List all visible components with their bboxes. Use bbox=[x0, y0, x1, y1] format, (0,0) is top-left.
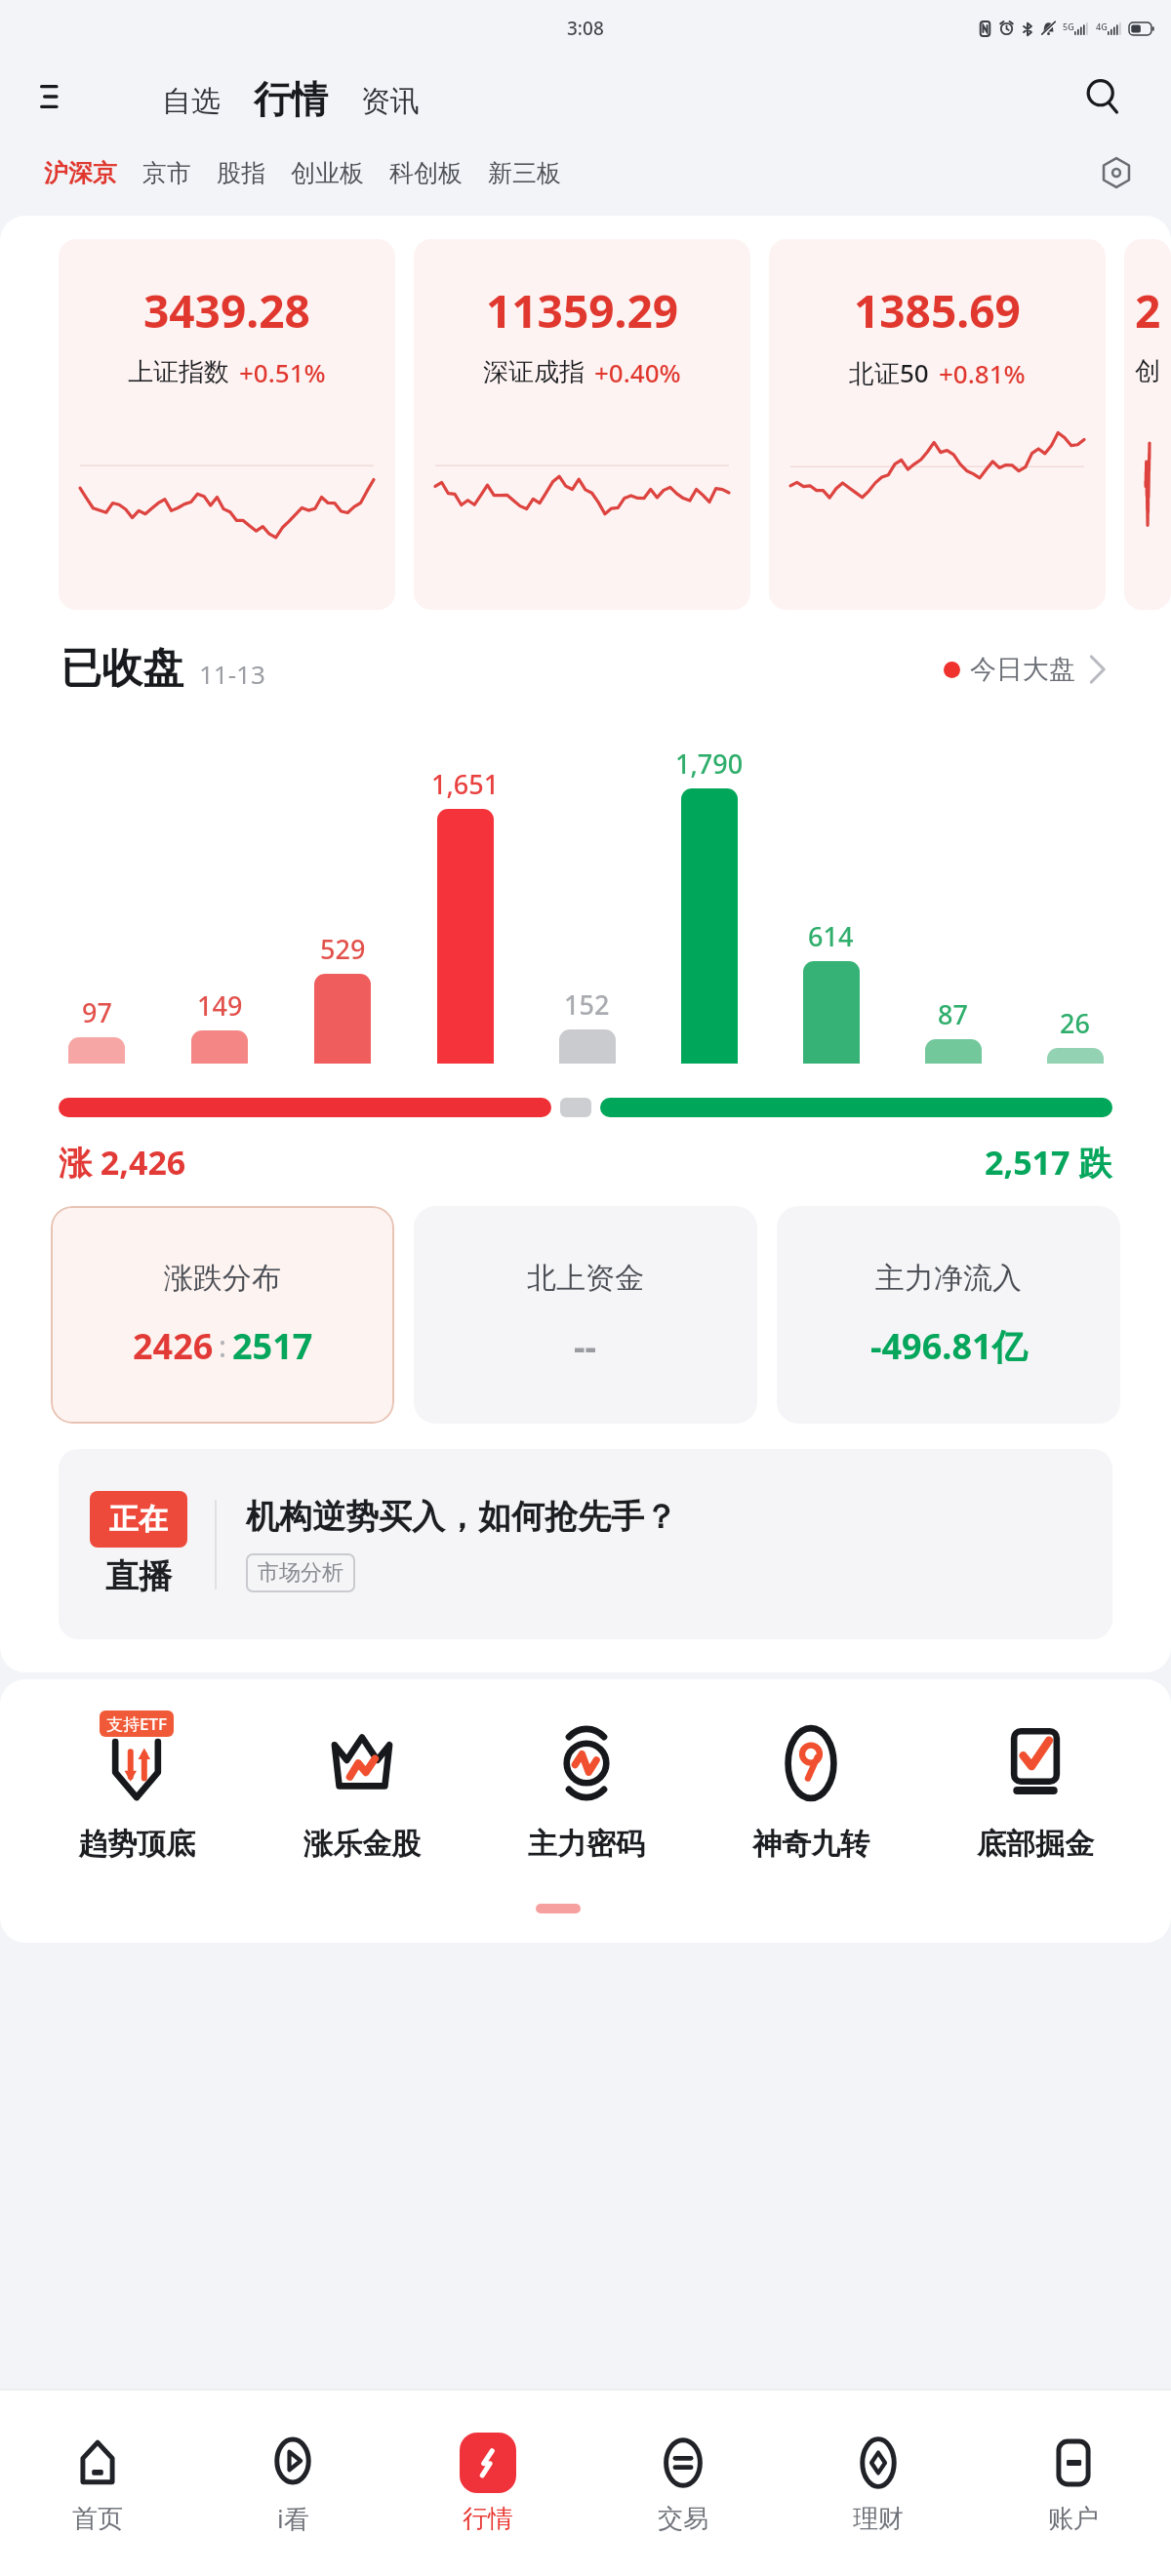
staticText: 市场分析 bbox=[258, 1559, 343, 1587]
staticText: 97 bbox=[82, 994, 112, 1030]
button[interactable]: 正在 bbox=[59, 1449, 1112, 1639]
staticText: 交易 bbox=[658, 2503, 708, 2535]
button[interactable]: 底部掘金 bbox=[923, 1716, 1148, 1863]
staticText: 创 bbox=[1135, 355, 1160, 387]
button[interactable]: i看 bbox=[195, 2391, 390, 2576]
button[interactable]: 2 bbox=[1124, 239, 1171, 610]
button[interactable]: 创业板 bbox=[278, 152, 377, 194]
staticText: 2 bbox=[1135, 280, 1161, 342]
staticText: 自选 bbox=[162, 83, 221, 120]
button[interactable]: Settings bbox=[1091, 147, 1142, 198]
staticText: 主力净流入 bbox=[875, 1260, 1022, 1297]
button[interactable]: 账户 bbox=[976, 2391, 1171, 2576]
staticText: 87 bbox=[938, 996, 968, 1032]
staticText: 股指 bbox=[217, 158, 265, 188]
staticText: 涨 2,426 bbox=[59, 1140, 186, 1185]
staticText: 行情 bbox=[463, 2503, 513, 2535]
staticText: 深证成指 bbox=[483, 356, 585, 388]
staticText: 北证50 bbox=[849, 355, 929, 390]
staticText: 行情 bbox=[254, 76, 328, 123]
button[interactable]: 股指 bbox=[204, 152, 278, 194]
button[interactable]: 北上资金 bbox=[414, 1206, 757, 1424]
staticText: 4G bbox=[1096, 20, 1108, 32]
staticText: 正在 bbox=[109, 1501, 168, 1538]
button[interactable]: 主力净流入 bbox=[777, 1206, 1120, 1424]
staticText: 152 bbox=[564, 986, 610, 1023]
button[interactable]: 自选 bbox=[156, 83, 226, 120]
button[interactable]: 11359.29 bbox=[414, 239, 750, 610]
button[interactable]: 新三板 bbox=[475, 152, 574, 194]
staticText: 首页 bbox=[72, 2503, 123, 2535]
staticText: 已收盘 bbox=[61, 643, 183, 695]
staticText: +0.81% bbox=[939, 356, 1026, 390]
staticText: : bbox=[219, 1326, 227, 1366]
staticText: 1,790 bbox=[675, 745, 744, 782]
staticText: 京市 bbox=[142, 158, 191, 188]
staticText: 11359.29 bbox=[486, 280, 679, 342]
staticText: 2,517 跌 bbox=[985, 1140, 1112, 1185]
staticText: 科创板 bbox=[389, 158, 463, 188]
staticText: 26 bbox=[1060, 1005, 1090, 1041]
button[interactable]: Menu bbox=[33, 75, 76, 118]
button[interactable]: 沪深京 bbox=[31, 152, 130, 194]
staticText: 涨乐金股 bbox=[303, 1826, 421, 1863]
staticText: -- bbox=[574, 1322, 597, 1370]
button[interactable]: 涨乐金股 bbox=[249, 1716, 474, 1863]
staticText: 涨跌分布 bbox=[164, 1260, 281, 1297]
staticText: 149 bbox=[197, 987, 243, 1024]
staticText: 资讯 bbox=[361, 83, 420, 120]
staticText: 理财 bbox=[853, 2503, 904, 2535]
button[interactable]: 首页 bbox=[0, 2391, 195, 2576]
staticText: 趋势顶底 bbox=[78, 1826, 195, 1863]
staticText: 主力密码 bbox=[528, 1826, 645, 1863]
staticText: 底部掘金 bbox=[977, 1826, 1094, 1863]
button[interactable]: 京市 bbox=[130, 152, 204, 194]
button[interactable]: 1385.69 bbox=[769, 239, 1106, 610]
staticText: 支持ETF bbox=[106, 1712, 167, 1735]
staticText: +0.51% bbox=[239, 355, 326, 389]
staticText: 3:08 bbox=[567, 16, 604, 41]
staticText: 上证指数 bbox=[128, 356, 229, 388]
button[interactable]: 神奇九转 bbox=[699, 1716, 923, 1863]
staticText: 今日大盘 bbox=[970, 653, 1075, 686]
button[interactable]: 资讯 bbox=[355, 83, 425, 120]
button[interactable]: 主力密码 bbox=[474, 1716, 699, 1863]
staticText: 创业板 bbox=[291, 158, 364, 188]
staticText: 新三板 bbox=[488, 158, 561, 188]
staticText: -496.81亿 bbox=[870, 1322, 1028, 1370]
staticText: 2517 bbox=[232, 1322, 313, 1370]
staticText: 机构逆势买入，如何抢先手？ bbox=[246, 1496, 677, 1538]
staticText: 1385.69 bbox=[854, 280, 1021, 342]
staticText: 614 bbox=[808, 918, 854, 954]
staticText: 5G bbox=[1063, 20, 1074, 32]
staticText: 北上资金 bbox=[527, 1260, 644, 1297]
button[interactable]: 理财 bbox=[781, 2391, 976, 2576]
staticText: i看 bbox=[277, 2501, 309, 2536]
staticText: 2426 bbox=[133, 1322, 214, 1370]
staticText: 账户 bbox=[1048, 2503, 1099, 2535]
button[interactable]: 支持ETF bbox=[23, 1716, 249, 1863]
button[interactable]: 今日大盘 bbox=[938, 647, 1110, 692]
staticText: 11-13 bbox=[199, 657, 265, 691]
button[interactable]: 科创板 bbox=[377, 152, 475, 194]
staticText: 沪深京 bbox=[44, 158, 117, 188]
button[interactable]: 涨跌分布 bbox=[51, 1206, 394, 1424]
staticText: 1,651 bbox=[431, 766, 500, 802]
button[interactable]: 行情 bbox=[390, 2391, 585, 2576]
button[interactable]: 交易 bbox=[585, 2391, 781, 2576]
staticText: 神奇九转 bbox=[752, 1826, 869, 1863]
button[interactable]: 行情 bbox=[248, 73, 334, 120]
staticText: +0.40% bbox=[594, 355, 681, 389]
staticText: 直播 bbox=[105, 1555, 172, 1597]
button[interactable]: 3439.28 bbox=[59, 239, 395, 610]
button[interactable]: Search bbox=[1075, 69, 1130, 124]
